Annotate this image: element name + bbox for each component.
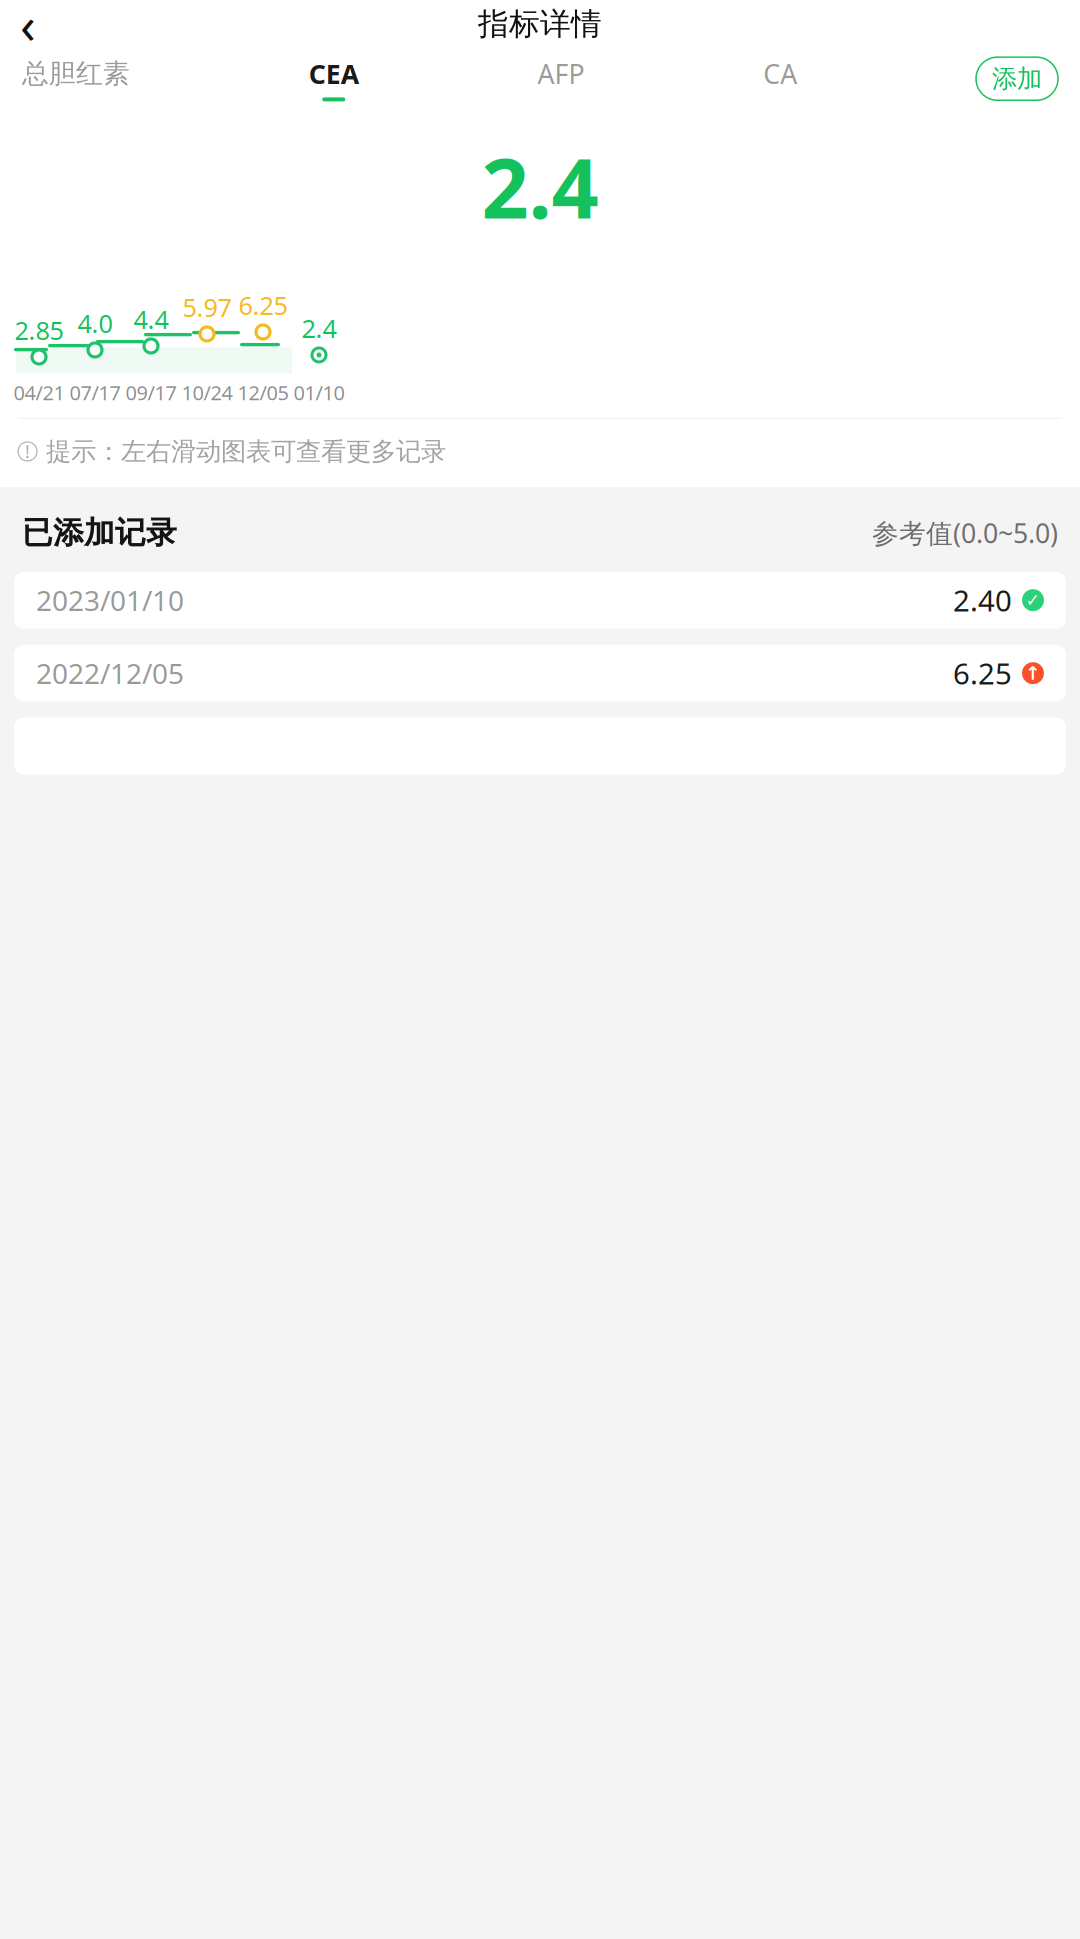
staticText: 总胆红素 bbox=[22, 57, 130, 90]
staticText: 指标详情 bbox=[478, 5, 602, 43]
staticText: AFP bbox=[537, 56, 584, 91]
staticText: 4.0 bbox=[77, 306, 112, 340]
staticText: 2.4 bbox=[301, 311, 336, 345]
staticText: 2023/01/10 bbox=[36, 582, 184, 619]
button[interactable]: 返回 bbox=[6, 2, 50, 46]
staticText: 6.25 bbox=[238, 288, 287, 322]
staticText: 04/21 bbox=[13, 379, 64, 406]
staticText: 2.85 bbox=[14, 313, 63, 347]
staticText: ! bbox=[25, 440, 30, 463]
staticText: 12/05 bbox=[237, 379, 288, 406]
staticText: ‹ bbox=[20, 0, 36, 58]
staticText: 2022/12/05 bbox=[36, 655, 184, 692]
button[interactable]: 总胆红素 bbox=[22, 57, 130, 100]
staticText: CEA bbox=[309, 56, 359, 91]
staticText: CA bbox=[763, 56, 797, 91]
button[interactable]: 添加 bbox=[976, 57, 1058, 100]
button[interactable]: 2022/12/05 bbox=[14, 645, 1066, 702]
staticText: 提示：左右滑动图表可查看更多记录 bbox=[46, 436, 446, 467]
button[interactable]: AFP bbox=[537, 56, 584, 101]
staticText: 01/10 bbox=[293, 379, 344, 406]
staticText: 5.97 bbox=[182, 290, 231, 324]
staticText: ↑ bbox=[1025, 663, 1041, 684]
staticText: 2.40 bbox=[953, 581, 1012, 620]
staticText: 07/17 bbox=[69, 379, 120, 406]
staticText: 添加 bbox=[992, 63, 1042, 94]
button[interactable]: 2023/01/10 bbox=[14, 572, 1066, 629]
button[interactable]: CA bbox=[763, 56, 797, 101]
staticText: 参考值(0.0~5.0) bbox=[872, 515, 1058, 550]
staticText: 已添加记录 bbox=[22, 514, 177, 552]
staticText: 6.25 bbox=[953, 654, 1012, 693]
button[interactable]: CEA bbox=[309, 56, 359, 101]
staticText: 10/24 bbox=[181, 379, 232, 406]
staticText: 2.4 bbox=[481, 131, 598, 241]
staticText: ✓ bbox=[1025, 590, 1040, 610]
staticText: 09/17 bbox=[125, 379, 176, 406]
staticText: 4.4 bbox=[133, 302, 168, 336]
